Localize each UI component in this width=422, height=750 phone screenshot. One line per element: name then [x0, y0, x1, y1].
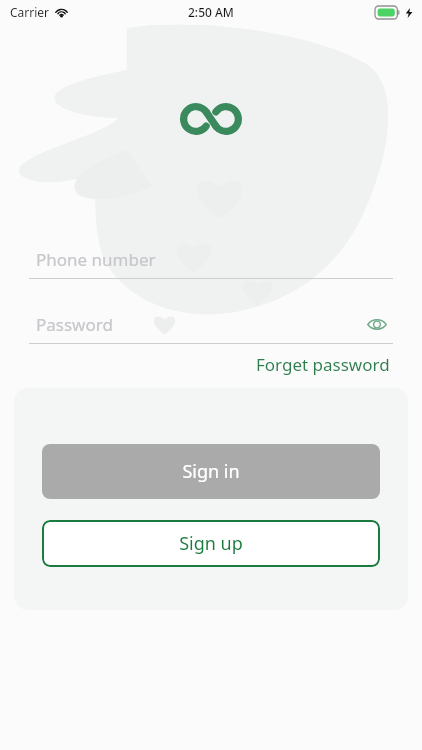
- staticText: Sign up: [179, 531, 243, 556]
- staticText: Sign in: [182, 459, 240, 484]
- button[interactable]: Forget password: [254, 350, 392, 379]
- button[interactable]: Phone number: [29, 240, 393, 278]
- staticText: Forget password: [256, 353, 390, 376]
- staticText: 2:50 AM: [188, 4, 234, 20]
- button[interactable]: Sign in: [42, 444, 380, 499]
- button[interactable]: Password: [29, 305, 393, 343]
- staticText: Password: [36, 313, 113, 336]
- button[interactable]: Sign up: [42, 520, 380, 567]
- staticText: Carrier: [10, 4, 50, 20]
- staticText: Phone number: [36, 248, 156, 271]
- button[interactable]: Show password: [361, 308, 393, 340]
